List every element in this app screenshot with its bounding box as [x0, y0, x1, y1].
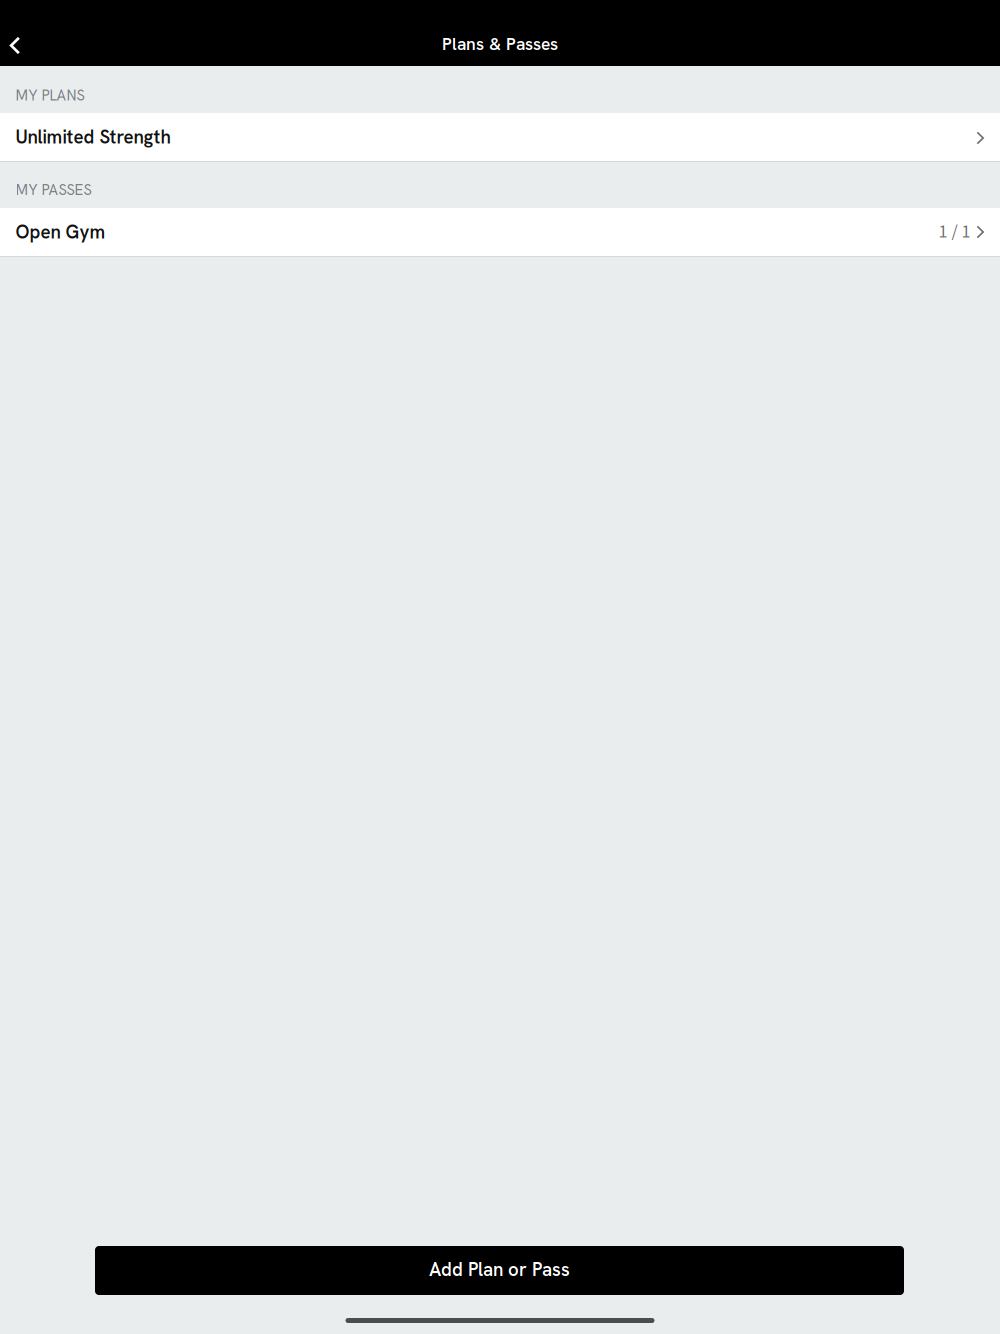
- staticText: Unlimited Strength: [15, 125, 170, 149]
- button[interactable]: Add Plan or Pass: [95, 1246, 904, 1295]
- staticText: Open Gym: [15, 220, 105, 244]
- staticText: MY PLANS: [15, 85, 84, 105]
- button[interactable]: Unlimited Strength: [0, 113, 1000, 161]
- staticText: MY PASSES: [15, 180, 91, 199]
- button[interactable]: Back: [0, 22, 48, 66]
- staticText: Add Plan or Pass: [429, 1257, 570, 1282]
- staticText: Plans & Passes: [442, 33, 558, 55]
- button[interactable]: Open Gym: [0, 208, 1000, 256]
- staticText: 1 / 1: [938, 219, 970, 245]
